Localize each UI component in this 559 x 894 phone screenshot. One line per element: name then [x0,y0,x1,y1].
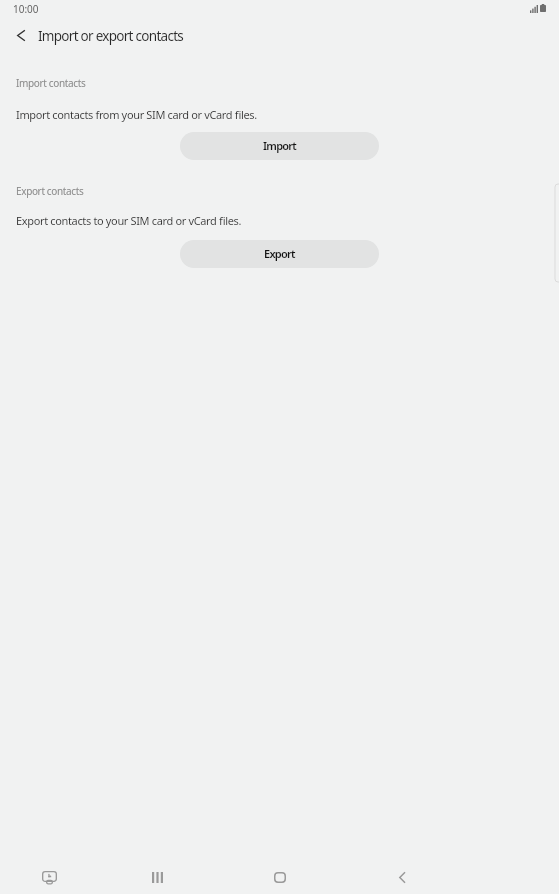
button[interactable]: Hide keyboard [27,855,71,894]
button[interactable]: Navigate up [7,21,35,49]
staticText: Import contacts from your SIM card or vC… [16,107,257,122]
button[interactable]: Import [180,132,379,160]
staticText: Import [263,138,297,153]
staticText: 10:00 [13,2,39,16]
staticText: Export [264,246,295,261]
staticText: Import or export contacts [38,27,184,45]
button[interactable]: Recent apps [135,855,179,894]
staticText: Export contacts [16,184,84,198]
staticText: Import contacts [16,76,86,90]
button[interactable]: Home [258,855,302,894]
button[interactable]: Back [380,855,424,894]
button[interactable]: Export [180,240,379,268]
staticText: Export contacts to your SIM card or vCar… [16,213,242,228]
